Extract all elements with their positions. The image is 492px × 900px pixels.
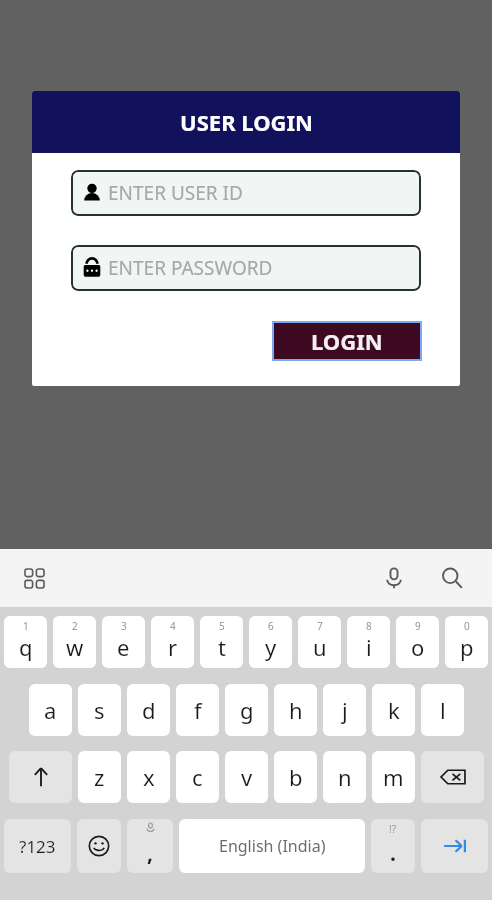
button[interactable]: ?123: [4, 819, 71, 873]
staticText: q: [19, 632, 33, 662]
button[interactable]: 1: [4, 616, 47, 668]
staticText: LOGIN: [311, 326, 383, 356]
staticText: !?: [389, 822, 397, 836]
staticText: USER LOGIN: [180, 107, 313, 137]
staticText: ?123: [19, 835, 56, 858]
button[interactable]: h: [274, 684, 317, 736]
staticText: 9: [415, 619, 421, 633]
button[interactable]: c: [176, 751, 219, 803]
staticText: h: [289, 695, 303, 725]
staticText: 8: [366, 619, 372, 633]
button[interactable]: Voice input: [372, 556, 416, 600]
staticText: 6: [268, 619, 274, 633]
button[interactable]: a: [29, 684, 72, 736]
staticText: y: [265, 632, 277, 662]
button[interactable]: 4: [151, 616, 194, 668]
staticText: 3: [121, 619, 127, 633]
staticText: k: [388, 695, 400, 725]
button[interactable]: 2: [53, 616, 96, 668]
button[interactable]: n: [323, 751, 366, 803]
button[interactable]: !?: [371, 819, 415, 873]
button[interactable]: l: [421, 684, 464, 736]
staticText: 0: [464, 619, 470, 633]
staticText: 7: [317, 619, 323, 633]
button[interactable]: 0: [445, 616, 488, 668]
button[interactable]: Backspace: [421, 751, 484, 803]
button[interactable]: Next: [421, 819, 488, 873]
button[interactable]: b: [274, 751, 317, 803]
staticText: u: [313, 632, 327, 662]
staticText: b: [289, 762, 303, 792]
button[interactable]: k: [372, 684, 415, 736]
staticText: n: [338, 762, 352, 792]
staticText: x: [143, 762, 155, 792]
staticText: 2: [72, 619, 78, 633]
button[interactable]: m: [372, 751, 415, 803]
button[interactable]: Keyboard options: [14, 558, 54, 598]
staticText: r: [168, 632, 178, 662]
button[interactable]: [77, 819, 121, 873]
button[interactable]: 9: [396, 616, 439, 668]
staticText: l: [440, 695, 446, 725]
staticText: m: [383, 762, 404, 792]
staticText: a: [44, 695, 57, 725]
button[interactable]: Search: [430, 556, 474, 600]
staticText: e: [117, 632, 130, 662]
button[interactable]: z: [78, 751, 121, 803]
staticText: c: [192, 762, 203, 792]
button[interactable]: d: [127, 684, 170, 736]
staticText: 4: [170, 619, 176, 633]
staticText: i: [366, 632, 372, 662]
staticText: d: [142, 695, 156, 725]
staticText: v: [241, 762, 253, 792]
button[interactable]: 5: [200, 616, 243, 668]
button[interactable]: f: [176, 684, 219, 736]
staticText: .: [390, 839, 396, 868]
staticText: English (India): [219, 835, 326, 857]
staticText: ,: [147, 839, 153, 868]
staticText: j: [342, 695, 348, 725]
button[interactable]: ENTER USER ID: [71, 170, 421, 216]
staticText: p: [460, 632, 474, 662]
button[interactable]: 8: [347, 616, 390, 668]
button[interactable]: s: [78, 684, 121, 736]
staticText: ENTER USER ID: [108, 180, 243, 206]
button[interactable]: Shift: [9, 751, 72, 803]
staticText: z: [94, 762, 105, 792]
button[interactable]: ,: [127, 819, 173, 873]
staticText: f: [194, 695, 202, 725]
button[interactable]: 3: [102, 616, 145, 668]
button[interactable]: v: [225, 751, 268, 803]
button[interactable]: 6: [249, 616, 292, 668]
staticText: t: [218, 632, 226, 662]
button[interactable]: j: [323, 684, 366, 736]
staticText: s: [94, 695, 105, 725]
staticText: 1: [23, 619, 29, 633]
button[interactable]: English (India): [179, 819, 365, 873]
button[interactable]: 7: [298, 616, 341, 668]
button[interactable]: LOGIN: [274, 323, 420, 359]
staticText: 5: [219, 619, 225, 633]
staticText: o: [411, 632, 425, 662]
button[interactable]: ENTER PASSWORD: [71, 245, 421, 291]
button[interactable]: x: [127, 751, 170, 803]
button[interactable]: g: [225, 684, 268, 736]
staticText: w: [66, 632, 84, 662]
staticText: ENTER PASSWORD: [108, 255, 273, 281]
staticText: g: [240, 695, 254, 725]
